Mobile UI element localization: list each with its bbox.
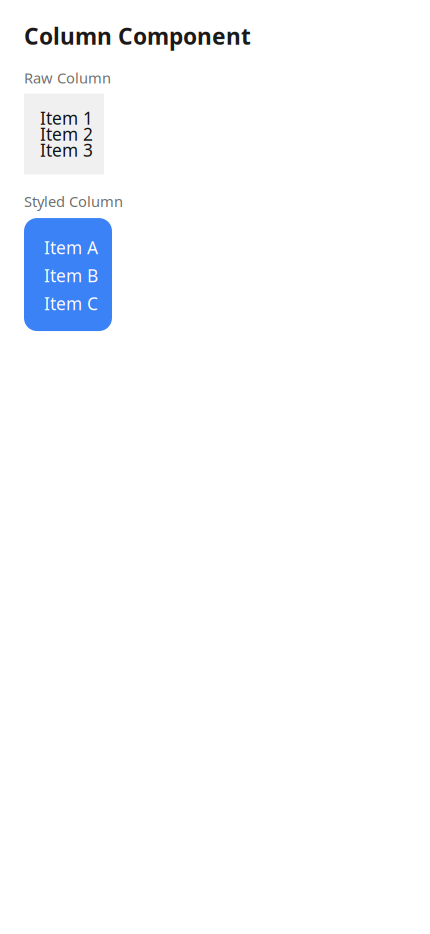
button[interactable]: Item 1 <box>24 94 104 175</box>
staticText: Item A <box>44 236 98 259</box>
staticText: Item B <box>44 264 98 287</box>
button[interactable]: Item A <box>24 218 112 331</box>
staticText: Item C <box>44 292 98 315</box>
staticText: Styled Column <box>24 192 123 211</box>
staticText: Item 2 <box>40 123 93 146</box>
staticText: Item 3 <box>40 139 93 162</box>
staticText: Column Component <box>24 21 251 51</box>
staticText: Raw Column <box>24 68 111 88</box>
staticText: Item 1 <box>40 107 93 130</box>
